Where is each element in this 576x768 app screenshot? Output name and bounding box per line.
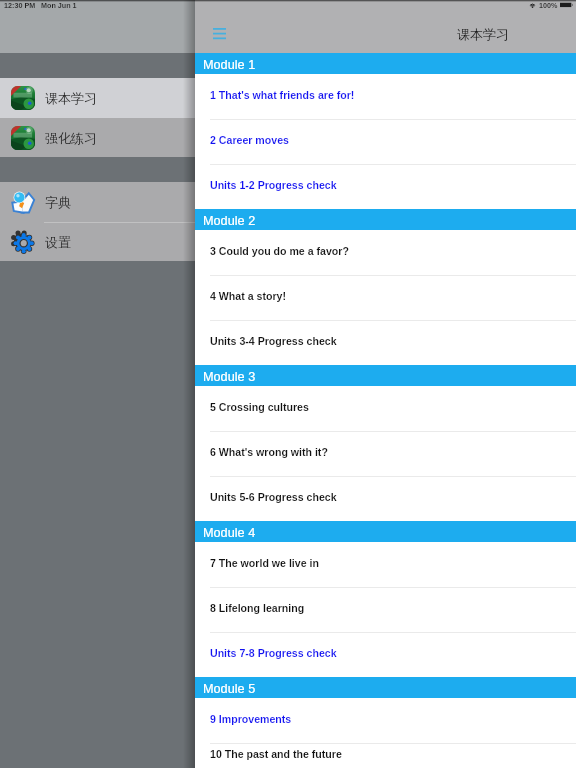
button[interactable]: Units 7-8 Progress check (195, 632, 576, 677)
button[interactable]: 10 The past and the future (195, 743, 576, 768)
button[interactable]: Units 5-6 Progress check (195, 476, 576, 521)
staticText: 字典 (45, 194, 71, 210)
button[interactable]: 7 The world we live in (195, 542, 576, 587)
staticText: 9 Improvements (210, 713, 292, 725)
staticText: Module 3 (203, 370, 256, 384)
staticText: Mon Jun 1 (41, 1, 77, 9)
staticText: Units 1-2 Progress check (210, 179, 337, 191)
button[interactable]: 4 What a story! (195, 275, 576, 320)
button[interactable]: 3 Could you do me a favor? (195, 230, 576, 275)
staticText: 12:30 PM (4, 1, 36, 9)
staticText: 2 Career moves (210, 134, 289, 146)
staticText: 100% (539, 1, 558, 9)
button[interactable]: Units 1-2 Progress check (195, 164, 576, 209)
button[interactable]: 强化练习 (0, 118, 195, 157)
staticText: Units 7-8 Progress check (210, 647, 337, 659)
staticText: 强化练习 (45, 130, 97, 146)
button[interactable]: 字典 (0, 182, 195, 222)
button[interactable]: Open navigation menu (201, 18, 237, 48)
staticText: Units 5-6 Progress check (210, 491, 337, 503)
staticText: 3 Could you do me a favor? (210, 245, 349, 257)
staticText: 课本学习 (457, 26, 509, 42)
button[interactable]: 5 Crossing cultures (195, 386, 576, 431)
staticText: 8 Lifelong learning (210, 602, 305, 614)
staticText: 设置 (45, 234, 71, 250)
button[interactable]: 设置 (0, 222, 195, 261)
staticText: 1 That's what friends are for! (210, 89, 355, 101)
staticText: 10 The past and the future (210, 748, 342, 760)
staticText: Units 3-4 Progress check (210, 335, 337, 347)
staticText: Module 5 (203, 682, 256, 696)
button[interactable]: Units 3-4 Progress check (195, 320, 576, 365)
staticText: 课本学习 (45, 90, 97, 106)
staticText: Module 4 (203, 526, 256, 540)
staticText: Module 1 (203, 58, 256, 72)
staticText: 5 Crossing cultures (210, 401, 309, 413)
button[interactable]: 课本学习 (0, 78, 195, 118)
button[interactable]: 8 Lifelong learning (195, 587, 576, 632)
button[interactable]: 1 That's what friends are for! (195, 74, 576, 119)
staticText: Module 2 (203, 214, 256, 228)
staticText: 6 What's wrong with it? (210, 446, 328, 458)
button[interactable]: 9 Improvements (195, 698, 576, 743)
button[interactable]: 6 What's wrong with it? (195, 431, 576, 476)
staticText: 4 What a story! (210, 290, 286, 302)
button[interactable]: 2 Career moves (195, 119, 576, 164)
staticText: 7 The world we live in (210, 557, 319, 569)
